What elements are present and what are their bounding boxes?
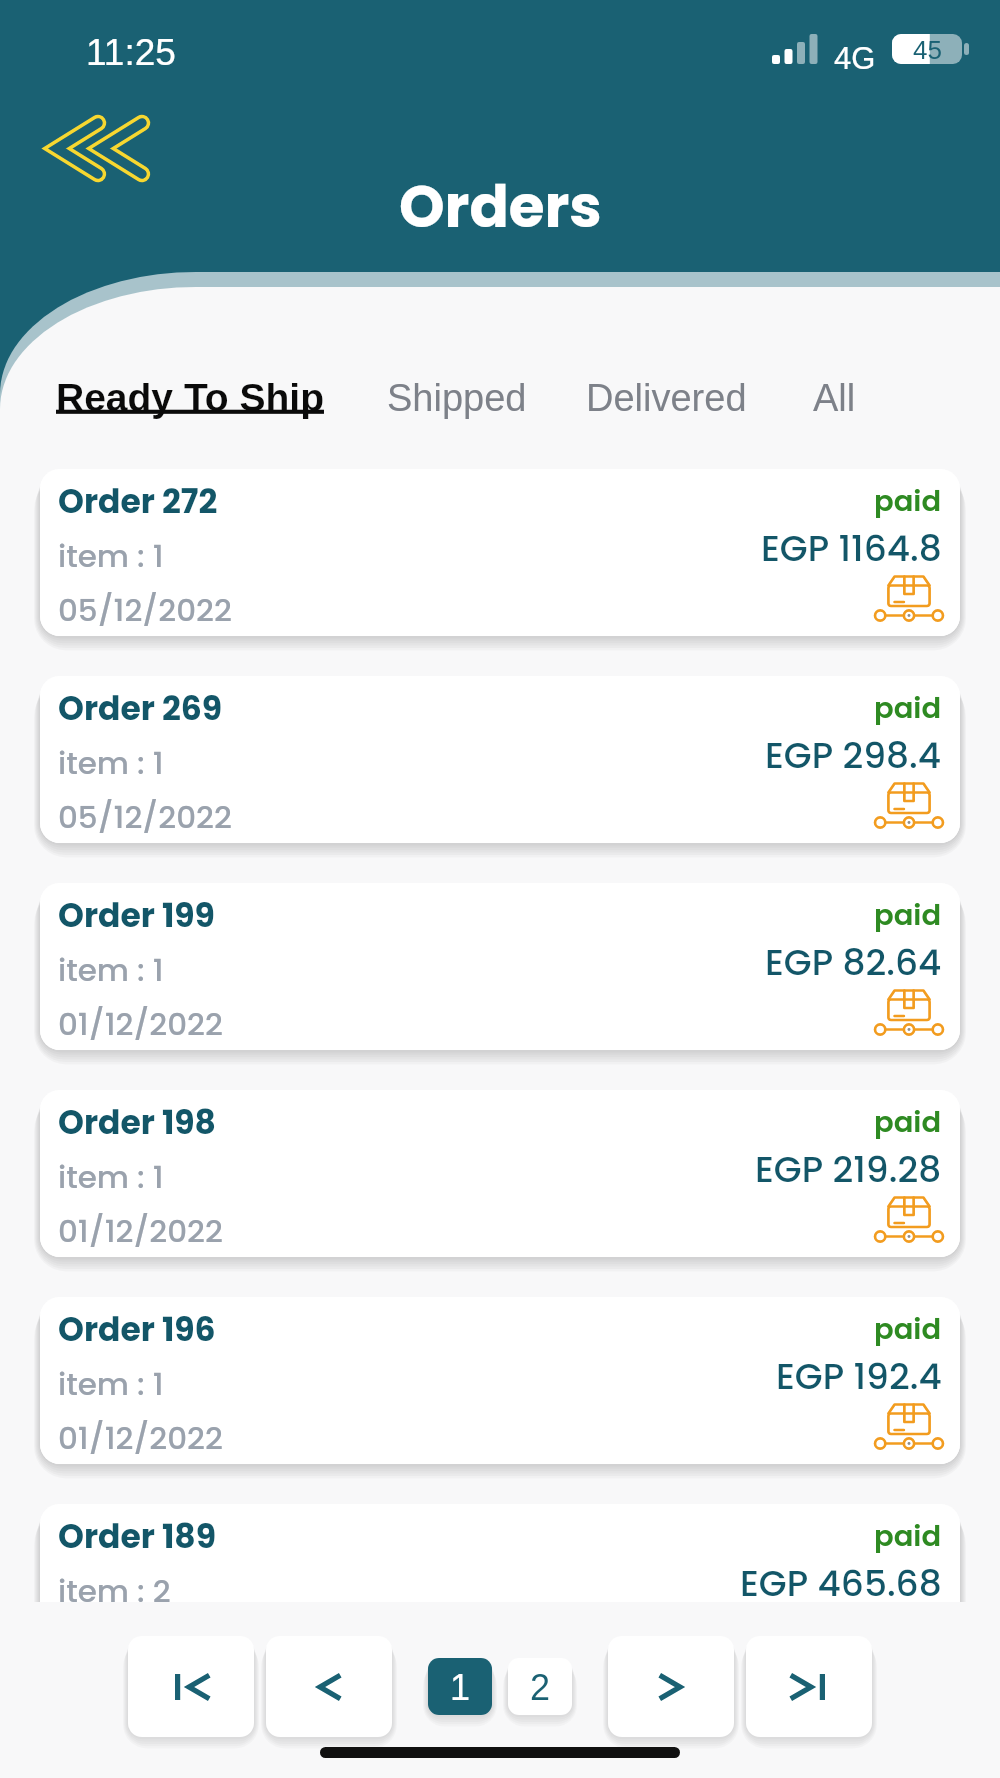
staticText: Order 198 bbox=[58, 1099, 217, 1145]
staticText: item : 1 bbox=[58, 741, 164, 784]
staticText: EGP 192.4 bbox=[776, 1351, 942, 1390]
staticText: item : 1 bbox=[58, 534, 164, 577]
staticText: 05/12/2022 bbox=[58, 795, 232, 838]
staticText: item : 2 bbox=[58, 1569, 171, 1612]
staticText: paid bbox=[874, 1516, 942, 1557]
staticText: Shipped bbox=[387, 377, 527, 419]
staticText: paid bbox=[874, 1309, 942, 1350]
staticText: Order 272 bbox=[58, 478, 218, 524]
button[interactable]: Ready To Ship bbox=[56, 370, 324, 426]
button[interactable]: Back bbox=[51, 106, 177, 190]
staticText: item : 1 bbox=[58, 1362, 164, 1405]
staticText: EGP 465.68 bbox=[740, 1558, 942, 1597]
staticText: EGP 219.28 bbox=[755, 1144, 942, 1183]
button[interactable]: Order 196 bbox=[40, 1297, 960, 1464]
staticText: EGP 298.4 bbox=[765, 730, 942, 769]
staticText: EGP 82.64 bbox=[765, 937, 942, 976]
button[interactable]: All bbox=[813, 371, 856, 425]
button[interactable]: Last page bbox=[746, 1636, 872, 1737]
staticText: 01/12/2022 bbox=[58, 1002, 223, 1045]
button[interactable]: Shipped bbox=[387, 371, 527, 425]
staticText: 01/12/2022 bbox=[58, 1623, 223, 1666]
button[interactable]: 1 bbox=[428, 1658, 492, 1715]
staticText: Order 189 bbox=[58, 1513, 217, 1559]
staticText: Order 269 bbox=[58, 685, 223, 731]
staticText: paid bbox=[874, 1102, 942, 1143]
staticText: 45 bbox=[913, 35, 942, 64]
staticText: item : 1 bbox=[58, 948, 164, 991]
staticText: 01/12/2022 bbox=[58, 1209, 223, 1252]
staticText: Order 196 bbox=[58, 1306, 216, 1352]
staticText: 4G bbox=[834, 41, 876, 71]
button[interactable]: Order 272 bbox=[40, 469, 960, 636]
staticText: 2 bbox=[530, 1667, 551, 1707]
button[interactable]: Previous page bbox=[266, 1636, 392, 1737]
staticText: Order 199 bbox=[58, 892, 215, 938]
staticText: paid bbox=[874, 895, 942, 936]
staticText: paid bbox=[874, 688, 942, 729]
button[interactable]: First page bbox=[128, 1636, 254, 1737]
staticText: 1 bbox=[450, 1667, 471, 1707]
staticText: Delivered bbox=[586, 377, 747, 419]
staticText: Ready To Ship bbox=[56, 376, 324, 420]
staticText: 11:25 bbox=[86, 32, 176, 73]
staticText: 05/12/2022 bbox=[58, 588, 232, 631]
staticText: paid bbox=[874, 481, 942, 522]
button[interactable]: Order 269 bbox=[40, 676, 960, 843]
button[interactable]: Order 198 bbox=[40, 1090, 960, 1257]
button[interactable]: Delivered bbox=[586, 371, 747, 425]
staticText: item : 1 bbox=[58, 1155, 164, 1198]
staticText: All bbox=[813, 377, 856, 419]
staticText: Orders bbox=[399, 166, 602, 247]
staticText: 01/12/2022 bbox=[58, 1416, 223, 1459]
button[interactable]: Order 189 bbox=[40, 1504, 960, 1671]
button[interactable]: Order 199 bbox=[40, 883, 960, 1050]
button[interactable]: Next page bbox=[608, 1636, 734, 1737]
staticText: EGP 1164.8 bbox=[761, 523, 942, 562]
button[interactable]: 2 bbox=[508, 1658, 572, 1715]
